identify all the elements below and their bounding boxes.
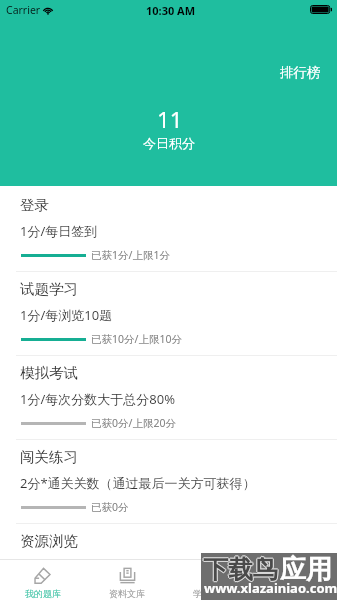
staticText: 下载鸟 xyxy=(202,554,277,585)
staticText: 闯关练习 xyxy=(20,448,78,466)
staticText: 下载鸟 xyxy=(204,554,279,585)
staticText: 学习中心 xyxy=(193,588,229,599)
staticText: 下载鸟 xyxy=(203,554,278,585)
staticText: 已获0分/上限20分 xyxy=(91,416,176,430)
staticText: 资源浏览 xyxy=(20,532,78,550)
staticText: 排行榜 xyxy=(280,64,321,81)
staticText: 11 xyxy=(157,104,183,135)
staticText: 今日积分 xyxy=(143,135,195,151)
staticText: Carrier xyxy=(6,3,41,17)
staticText: 下载鸟 xyxy=(203,555,278,586)
staticText: 个人中心 xyxy=(277,588,313,599)
button[interactable]: 资源浏览 xyxy=(0,522,337,566)
button[interactable]: 我的题库 xyxy=(0,560,85,600)
staticText: 1分/每浏览10题 xyxy=(20,306,113,324)
button[interactable]: 学习中心 xyxy=(169,560,253,600)
staticText: 已获1分/上限1分 xyxy=(91,248,170,262)
staticText: 1分/每日签到 xyxy=(20,222,98,240)
button[interactable]: 个人中心 xyxy=(253,560,337,600)
staticText: 模拟考试 xyxy=(20,364,78,382)
staticText: 已获10分/上限10分 xyxy=(91,332,182,346)
staticText: 下载鸟 xyxy=(203,553,278,584)
staticText: www.xlazainiao.com xyxy=(204,579,337,597)
staticText: 试题学习 xyxy=(20,280,78,298)
staticText: 2分*通关关数（通过最后一关方可获得） xyxy=(20,474,256,492)
button[interactable]: 登录 xyxy=(0,186,337,270)
button[interactable]: 模拟考试 xyxy=(0,354,337,438)
staticText: 已获0分 xyxy=(91,500,129,514)
staticText: 10:30 AM xyxy=(146,3,196,18)
button[interactable]: 闯关练习 xyxy=(0,438,337,522)
staticText: 登录 xyxy=(20,196,49,214)
staticText: 我的题库 xyxy=(25,588,61,599)
staticText: 1分/每次分数大于总分80% xyxy=(20,390,175,408)
button[interactable]: 资料文库 xyxy=(85,560,169,600)
button[interactable]: 排行榜 xyxy=(264,58,337,87)
staticText: 应用 xyxy=(280,553,332,586)
staticText: 资料文库 xyxy=(109,588,145,599)
button[interactable]: 试题学习 xyxy=(0,270,337,354)
